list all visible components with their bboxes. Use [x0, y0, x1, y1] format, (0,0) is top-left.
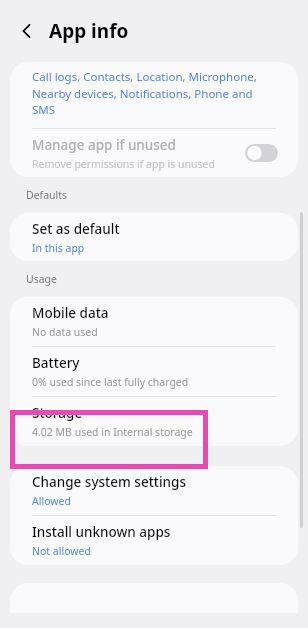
button[interactable]: Install unknown apps — [10, 516, 298, 565]
staticText: Install unknown apps — [32, 523, 171, 541]
button[interactable]: Change system settings — [10, 466, 298, 515]
staticText: Not allowed — [32, 544, 91, 558]
other: Manage app if unused toggle — [245, 144, 278, 162]
button[interactable]: Battery — [10, 347, 298, 396]
button[interactable]: Mobile data — [10, 297, 298, 346]
staticText: Usage — [26, 272, 57, 286]
staticText: Manage app if unused — [32, 136, 176, 154]
button[interactable]: Storage — [10, 397, 298, 446]
staticText: Storage — [32, 404, 83, 422]
staticText: Defaults — [26, 188, 68, 202]
staticText: Call logs, Contacts, Location, Microphon… — [32, 69, 276, 117]
staticText: Remove permissions if app is unused — [32, 157, 215, 171]
staticText: 0% used since last fully charged — [32, 375, 189, 389]
button[interactable]: Set as default — [10, 213, 298, 261]
staticText: Mobile data — [32, 304, 109, 322]
staticText: 4.02 MB used in Internal storage — [32, 425, 193, 439]
staticText: Change system settings — [32, 473, 187, 491]
staticText: No data used — [32, 325, 98, 339]
button[interactable]: Call logs, Contacts, Location, Microphon… — [10, 62, 298, 128]
staticText: Battery — [32, 354, 80, 372]
staticText: Allowed — [32, 494, 71, 508]
staticText: Set as default — [32, 220, 120, 238]
staticText: App info — [49, 18, 129, 44]
staticText: In this app — [32, 241, 85, 255]
button[interactable]: Back — [12, 16, 42, 46]
button[interactable]: Manage app if unused — [10, 129, 298, 177]
